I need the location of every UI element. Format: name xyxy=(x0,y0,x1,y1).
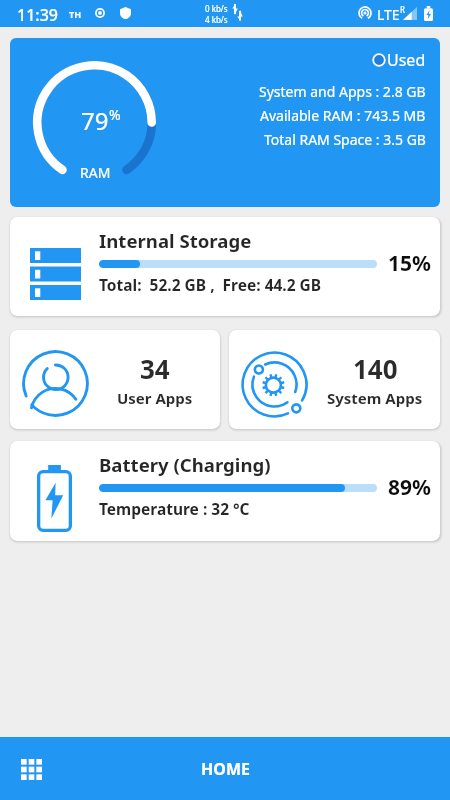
staticText: Total: 52.2 GB , Free: 44.2 GB xyxy=(99,274,322,295)
button[interactable]: HOME xyxy=(165,742,286,796)
staticText: % xyxy=(109,105,121,124)
button[interactable]: 79 xyxy=(10,38,440,207)
staticText: System and Apps : 2.8 GB xyxy=(259,82,426,101)
staticText: User Apps xyxy=(117,388,193,408)
staticText: Temperature : 32 °C xyxy=(99,498,250,519)
staticText: 4 kb/s xyxy=(205,14,228,25)
staticText: Available RAM : 743.5 MB xyxy=(260,106,426,125)
staticText: Internal Storage xyxy=(99,228,252,253)
button[interactable]: Apps xyxy=(9,747,53,791)
staticText: 140 xyxy=(353,351,398,386)
button[interactable]: System apps xyxy=(229,330,440,429)
staticText: HOME xyxy=(201,758,250,780)
staticText: Used xyxy=(387,49,426,71)
staticText: RAM xyxy=(80,163,111,182)
staticText: 79 xyxy=(81,104,109,137)
staticText: R xyxy=(400,4,405,15)
staticText: 0 kb/s xyxy=(205,3,228,14)
staticText: Battery (Charging) xyxy=(99,452,271,477)
button[interactable]: Battery (Charging) xyxy=(10,441,440,541)
other: System apps xyxy=(241,351,308,418)
staticText: System Apps xyxy=(327,388,423,408)
staticText: 89% xyxy=(388,473,431,502)
staticText: 34 xyxy=(140,351,170,386)
staticText: 11:39 xyxy=(17,4,58,26)
staticText: TH xyxy=(69,8,82,20)
staticText: LTE xyxy=(377,5,400,24)
button[interactable]: User apps xyxy=(10,330,220,429)
staticText: 15% xyxy=(388,249,431,278)
staticText: Total RAM Space : 3.5 GB xyxy=(264,130,426,149)
button[interactable]: Internal Storage xyxy=(10,217,440,316)
other: User apps xyxy=(22,350,89,417)
